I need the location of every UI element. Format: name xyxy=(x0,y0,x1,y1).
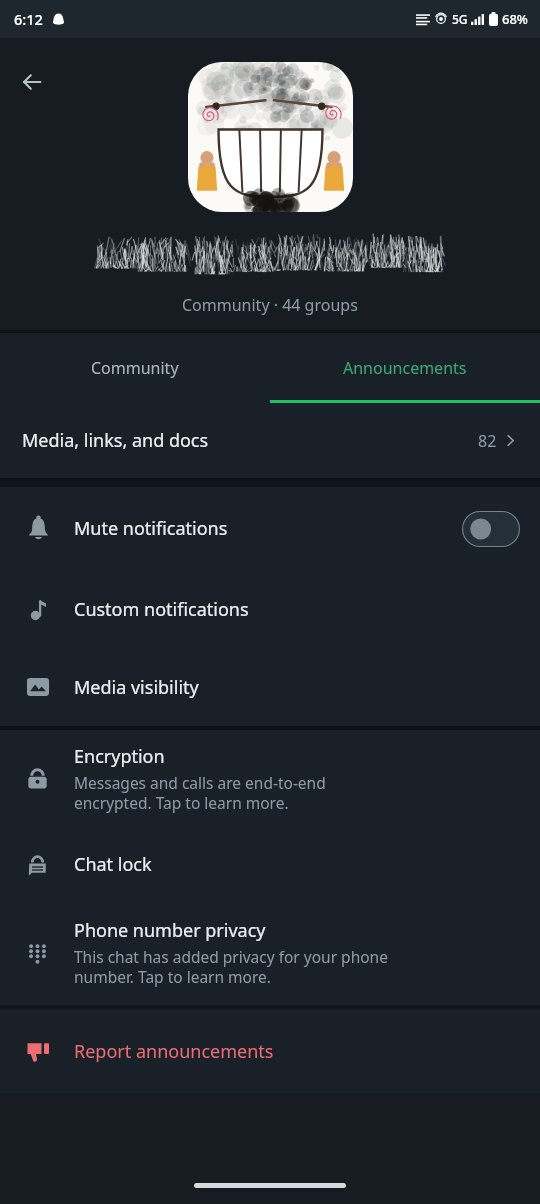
staticText: Report announcements xyxy=(74,1039,274,1064)
button[interactable]: Phone number privacy xyxy=(0,901,540,1005)
staticText: Media visibility xyxy=(74,675,199,700)
staticText: 68% xyxy=(502,10,528,28)
button[interactable]: Announcements xyxy=(270,333,540,403)
staticText: Mute notifications xyxy=(74,516,228,541)
staticText: Encryption xyxy=(74,744,165,769)
button[interactable]: Mute notifications toggle xyxy=(462,511,520,547)
button[interactable]: Media, links, and docs xyxy=(0,403,540,478)
button[interactable]: Custom notifications xyxy=(0,570,540,648)
button[interactable]: Community photo xyxy=(188,62,353,212)
staticText: 6:12 xyxy=(14,9,43,29)
button[interactable]: Back xyxy=(8,58,56,106)
button[interactable]: Chat lock xyxy=(0,827,540,901)
staticText: Media, links, and docs xyxy=(22,428,209,453)
staticText: Phone number privacy xyxy=(74,918,266,943)
button[interactable]: Mute notifications xyxy=(0,487,540,570)
staticText: 5G xyxy=(452,11,468,27)
button[interactable]: Community xyxy=(0,333,270,403)
staticText: 82 xyxy=(478,430,497,452)
button[interactable]: Encryption xyxy=(0,730,540,827)
staticText: Announcements xyxy=(343,357,467,379)
button[interactable]: Media visibility xyxy=(0,648,540,726)
button[interactable]: Report announcements xyxy=(0,1009,540,1093)
staticText: Messages and calls are end-to-end encryp… xyxy=(74,772,326,814)
staticText: Community xyxy=(91,357,179,379)
staticText: Community · 44 groups xyxy=(182,294,358,316)
staticText: This chat has added privacy for your pho… xyxy=(74,946,388,988)
staticText: Custom notifications xyxy=(74,597,249,622)
staticText: Chat lock xyxy=(74,852,152,877)
